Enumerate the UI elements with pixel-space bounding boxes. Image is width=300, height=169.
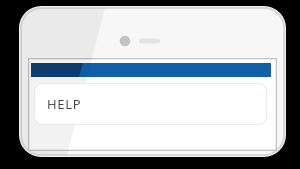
button[interactable]: Help	[34, 83, 267, 125]
staticText: HELP	[47, 95, 82, 113]
